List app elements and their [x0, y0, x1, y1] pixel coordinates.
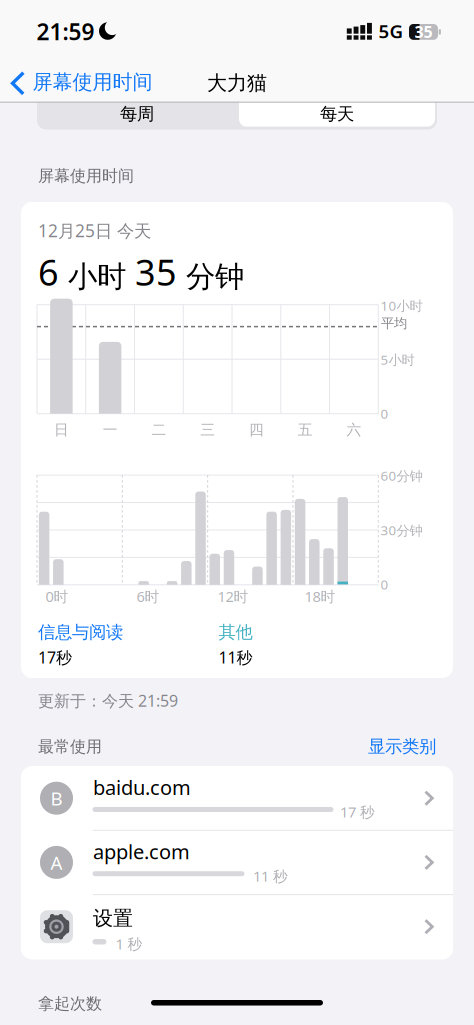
staticText: 17秒 — [38, 647, 72, 668]
staticText: 21:59 — [36, 16, 94, 46]
staticText: 5G — [378, 19, 403, 43]
staticText: 6 小时 35 分钟 — [38, 248, 244, 296]
button[interactable]: A — [21, 830, 453, 894]
staticText: 30分钟 — [380, 521, 422, 539]
staticText: 17 秒 — [340, 802, 375, 821]
staticText: 12月25日 今天 — [38, 219, 151, 242]
staticText: 四 — [249, 421, 264, 439]
staticText: 平均 — [381, 315, 407, 332]
staticText: 0 — [380, 575, 388, 593]
staticText: 五 — [298, 421, 313, 439]
staticText: 二 — [151, 421, 166, 439]
staticText: 0时 — [45, 587, 68, 606]
staticText: 三 — [200, 421, 215, 439]
staticText: 18时 — [304, 587, 335, 606]
button[interactable]: 设置 — [21, 894, 453, 959]
staticText: 其他 — [218, 622, 252, 643]
staticText: 5小时 — [380, 351, 414, 368]
staticText: 显示类别 — [368, 736, 436, 757]
staticText: A — [50, 850, 62, 875]
staticText: 更新于：今天 21:59 — [38, 690, 178, 711]
staticText: 每天 — [320, 103, 354, 125]
staticText: 60分钟 — [380, 467, 422, 484]
staticText: 1 秒 — [115, 934, 142, 953]
staticText: 屏幕使用时间 — [32, 70, 152, 94]
staticText: 6时 — [136, 587, 159, 606]
staticText: B — [50, 786, 62, 811]
button[interactable]: 每天 — [238, 91, 436, 129]
staticText: 每周 — [120, 103, 154, 125]
staticText: 35 — [414, 21, 432, 42]
staticText: 日 — [54, 421, 69, 439]
staticText: 设置 — [93, 906, 133, 931]
staticText: 六 — [346, 421, 361, 439]
staticText: 一 — [103, 421, 118, 439]
button[interactable]: 返回屏幕使用时间 — [8, 66, 178, 99]
staticText: 拿起次数 — [38, 994, 102, 1013]
staticText: 信息与阅读 — [38, 622, 123, 643]
staticText: 0 — [380, 405, 388, 422]
staticText: 屏幕使用时间 — [38, 166, 134, 186]
staticText: 11秒 — [218, 647, 252, 668]
staticText: apple.com — [93, 838, 190, 865]
staticText: 最常使用 — [38, 737, 102, 756]
staticText: 大力猫 — [207, 71, 267, 95]
staticText: 10小时 — [380, 297, 422, 314]
button[interactable]: B — [21, 766, 453, 830]
staticText: 12时 — [217, 587, 248, 606]
button[interactable]: 每周 — [38, 91, 236, 129]
button[interactable]: 显示类别 — [368, 736, 436, 757]
staticText: baidu.com — [93, 774, 191, 801]
staticText: 11 秒 — [253, 866, 288, 886]
